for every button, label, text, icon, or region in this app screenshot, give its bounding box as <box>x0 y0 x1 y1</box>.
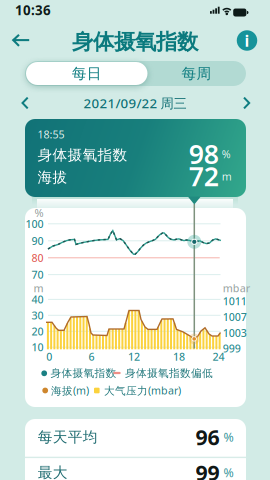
staticText: 每天平均 <box>38 428 98 446</box>
staticText: 100 <box>25 217 43 231</box>
staticText: 1003 <box>223 326 247 340</box>
button[interactable]: 每周 <box>147 61 245 86</box>
staticText: 40 <box>31 292 43 306</box>
staticText: 大气压力(mbar) <box>104 383 181 397</box>
staticText: 1007 <box>223 310 247 324</box>
staticText: 身体摄氧指数 <box>37 146 127 164</box>
staticText: 每周 <box>181 64 211 82</box>
staticText: 24 <box>212 349 224 364</box>
staticText: 18:55 <box>37 127 64 141</box>
staticText: 20 <box>31 324 43 338</box>
staticText: 96 <box>195 423 219 451</box>
staticText: % <box>34 206 43 220</box>
button[interactable]: Previous day <box>0 0 40 26</box>
button[interactable]: 每日 <box>26 62 147 85</box>
staticText: 0 <box>46 349 52 364</box>
staticText: 30 <box>31 308 43 322</box>
staticText: 12 <box>128 349 140 364</box>
staticText: 10:36 <box>15 1 51 19</box>
staticText: mbar <box>223 281 251 295</box>
staticText: 99 <box>195 458 219 480</box>
button[interactable]: Info <box>235 28 259 52</box>
staticText: 90 <box>31 234 43 248</box>
button[interactable]: Back <box>0 0 36 56</box>
staticText: 98 <box>189 136 219 171</box>
button[interactable]: Next day <box>0 0 270 26</box>
staticText: 80 <box>31 251 43 265</box>
staticText: 每日 <box>72 64 102 82</box>
button[interactable]: 每天平均 <box>25 418 246 455</box>
staticText: % <box>223 464 233 480</box>
staticText: 身体摄氧指数偏低 <box>125 367 213 380</box>
staticText: 999 <box>223 341 241 355</box>
staticText: 最大 <box>38 463 68 480</box>
staticText: m <box>33 281 43 295</box>
staticText: i <box>244 30 249 51</box>
staticText: 1011 <box>223 294 247 308</box>
staticText: m <box>222 169 232 183</box>
staticText: 70 <box>31 267 43 282</box>
staticText: 海拔 <box>37 168 67 186</box>
staticText: 身体摄氧指数 <box>72 29 198 55</box>
staticText: 72 <box>189 158 219 194</box>
staticText: 身体摄氧指数 <box>50 367 116 380</box>
staticText: 18 <box>173 349 185 364</box>
staticText: 海拔(m) <box>51 383 89 397</box>
staticText: 10 <box>31 340 43 354</box>
staticText: % <box>223 429 233 445</box>
staticText: % <box>222 147 231 161</box>
button[interactable]: 最大 <box>25 454 246 480</box>
staticText: 6 <box>88 349 94 364</box>
staticText: 2021/09/22 周三 <box>83 94 186 112</box>
